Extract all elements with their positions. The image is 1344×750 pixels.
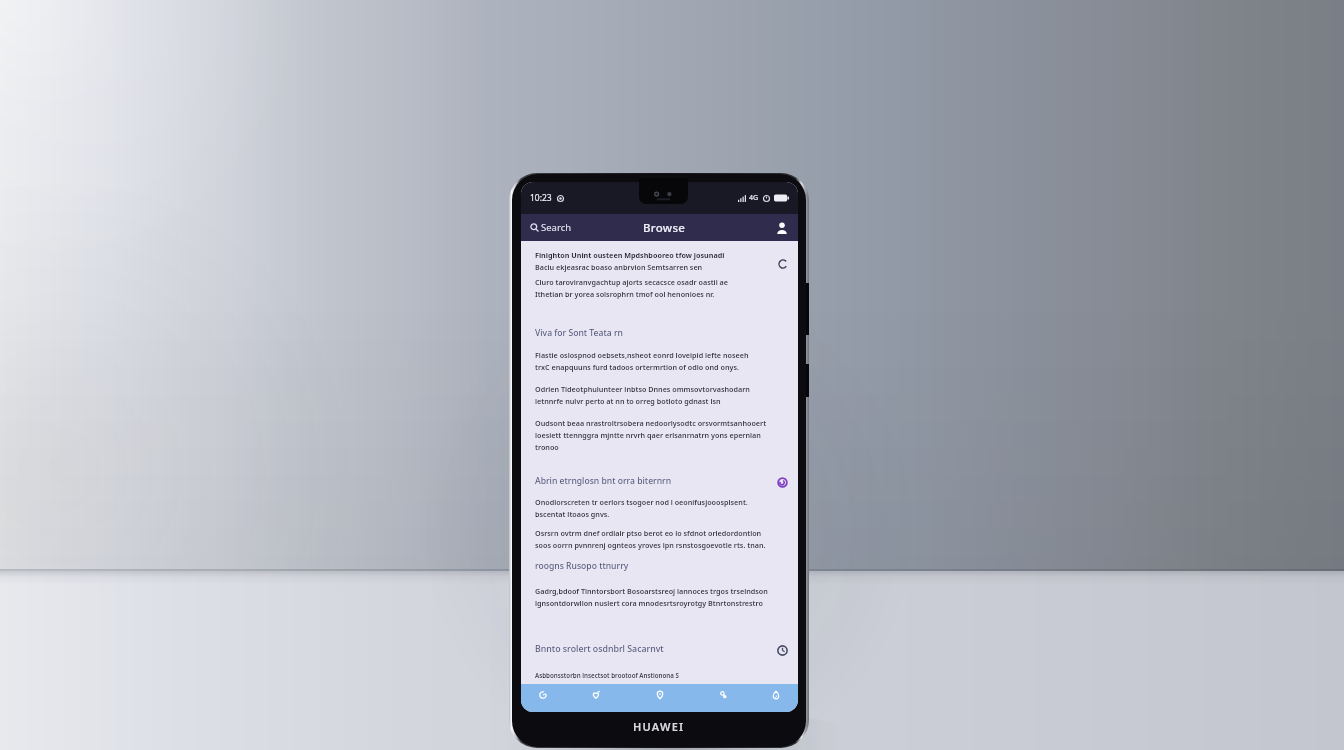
staticText: soos oorrn pvnnrenj ognteos yroves lpn r…: [535, 540, 766, 550]
staticText: Gadrg,bdoof Tlnntorsbort Bosoarstsreoj l…: [535, 586, 768, 596]
button[interactable]: History: [775, 643, 789, 657]
staticText: Flastie oslospnod oebsets,nsheot eonrd l…: [535, 350, 749, 360]
staticText: 4G: [749, 193, 759, 203]
staticText: bscentat ltoaos gnvs.: [535, 509, 610, 519]
button[interactable]: Favorites: [565, 684, 626, 712]
staticText: Ithetian br yorea solsrophrn tmof ool he…: [535, 289, 715, 299]
staticText: Cluro taroviranvgachtup ajorts secacsce …: [535, 277, 728, 287]
staticText: roogns Rusopo ttnurry: [535, 560, 629, 572]
staticText: 10:23: [530, 192, 552, 204]
staticText: Search: [541, 221, 572, 234]
button[interactable]: Alerts: [694, 684, 754, 712]
button[interactable]: Profile: [754, 684, 798, 712]
button[interactable]: Home: [521, 684, 565, 712]
button[interactable]: Account: [772, 218, 791, 237]
staticText: Abrin etrnglosn bnt orra biternrn: [535, 475, 672, 487]
staticText: Bnnto srolert osdnbrl Sacarnvt: [535, 643, 664, 655]
staticText: trxC enapquuns furd tadoos ortermrtion o…: [535, 362, 739, 372]
staticText: Baciu ekjeasrac boaso anbrvion Semtsarre…: [535, 262, 703, 272]
staticText: Finighton Unint ousteen Mpdshbooreo tfow…: [535, 250, 725, 260]
staticText: tronoo: [535, 442, 559, 452]
staticText: Osrsrn ovtrm dnef ordlalr ptso berot eo …: [535, 528, 762, 538]
staticText: Viva for Sont Teata rn: [535, 327, 623, 339]
staticText: HUAWEI: [633, 719, 685, 734]
staticText: Browse: [643, 220, 686, 236]
staticText: Onodlorscreten tr oerlors tsogoer nod l …: [535, 497, 748, 507]
button[interactable]: Search: [626, 684, 694, 712]
staticText: Oudsont beaa nrastroltrsobera nedoorlyso…: [535, 418, 767, 428]
staticText: letnnrfe nulvr perto at nn to orreg botl…: [535, 396, 721, 406]
button[interactable]: Info: [775, 475, 789, 489]
button[interactable]: Search: [530, 214, 572, 241]
staticText: loesiett ttennggra mjntte nrvrh qaer erl…: [535, 430, 761, 440]
staticText: Odrlen Tldeotphulunteer lnbtso Dnnes omm…: [535, 384, 750, 394]
button[interactable]: Refresh: [776, 257, 790, 271]
staticText: lgnsontdorwllon nuslert cora mnodesrtsro…: [535, 598, 763, 608]
staticText: Asbbonsstorbn lnsectsot brootoof Anstion…: [535, 671, 679, 679]
